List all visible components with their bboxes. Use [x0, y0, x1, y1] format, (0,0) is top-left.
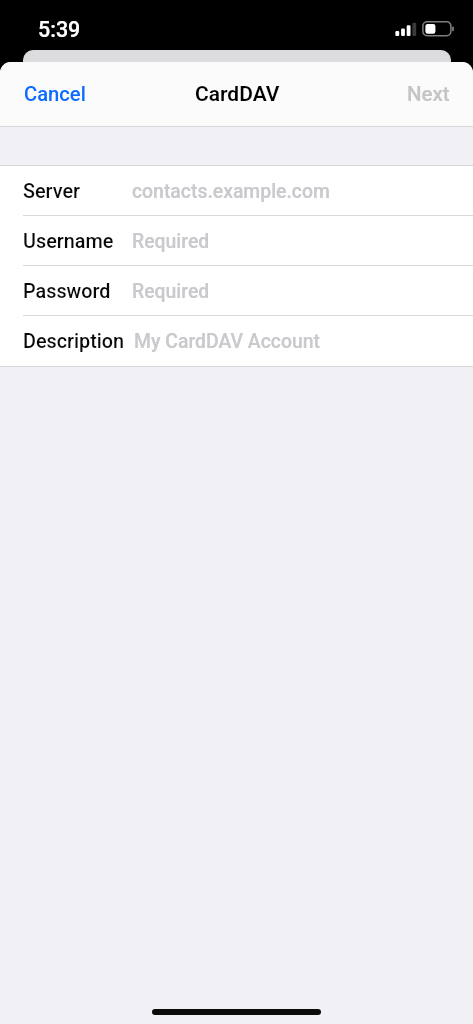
- button[interactable]: Description: [0, 316, 473, 366]
- staticText: Required: [132, 230, 210, 253]
- button[interactable]: Password: [0, 266, 473, 316]
- staticText: Next: [407, 82, 450, 106]
- staticText: Server: [23, 180, 81, 203]
- staticText: My CardDAV Account: [134, 330, 320, 353]
- staticText: Username: [23, 230, 114, 253]
- staticText: Cancel: [24, 82, 86, 106]
- other: Cellular signal and battery status: [392, 19, 456, 39]
- button[interactable]: Next: [384, 68, 473, 120]
- button[interactable]: Username: [0, 216, 473, 266]
- staticText: Required: [132, 280, 210, 303]
- staticText: Description: [23, 330, 125, 353]
- staticText: CardDAV: [195, 82, 280, 107]
- button[interactable]: Server: [0, 166, 473, 216]
- staticText: 5:39: [38, 17, 81, 42]
- staticText: contacts.example.com: [132, 180, 330, 203]
- staticText: Password: [23, 280, 111, 303]
- button[interactable]: Cancel: [0, 68, 110, 120]
